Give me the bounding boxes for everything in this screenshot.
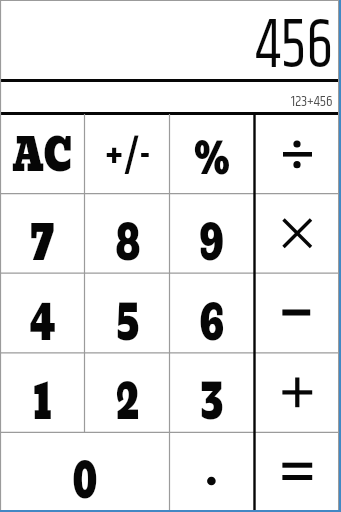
staticText: 6 [199, 275, 225, 354]
staticText: +/- [105, 128, 151, 186]
staticText: 456 [256, 0, 333, 72]
staticText: AC [13, 120, 72, 191]
staticText: 9 [199, 195, 225, 275]
button[interactable]: 5 [85, 275, 170, 354]
button[interactable]: 0 [0, 433, 170, 512]
button[interactable] [254, 275, 341, 354]
staticText: 4 [29, 275, 55, 354]
staticText: 2 [116, 354, 139, 433]
staticText: % [194, 115, 230, 195]
button[interactable]: 2 [85, 354, 170, 433]
button[interactable]: 4 [0, 275, 85, 354]
button[interactable]: 9 [170, 195, 254, 275]
staticText: 8 [115, 195, 141, 275]
staticText: 5 [116, 275, 140, 354]
button[interactable] [254, 433, 341, 512]
staticText: 7 [30, 195, 55, 275]
button[interactable]: % [170, 115, 254, 195]
button[interactable] [254, 195, 341, 275]
button[interactable]: 3 [170, 354, 254, 433]
button[interactable]: AC [0, 115, 85, 195]
staticText: 123+456 [291, 90, 333, 113]
staticText: 1 [33, 354, 52, 433]
button[interactable]: 7 [0, 195, 85, 275]
button[interactable]: 8 [85, 195, 170, 275]
button[interactable]: +/- [85, 115, 170, 195]
button[interactable]: 1 [0, 354, 85, 433]
button[interactable] [254, 115, 341, 195]
staticText: 3 [200, 354, 224, 433]
button[interactable] [170, 433, 254, 512]
button[interactable]: 6 [170, 275, 254, 354]
staticText: 0 [72, 433, 98, 512]
button[interactable] [254, 354, 341, 433]
